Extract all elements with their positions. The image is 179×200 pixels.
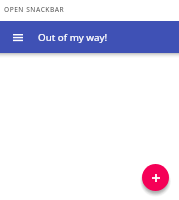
staticText: OPEN SNACKBAR [4, 5, 65, 14]
button[interactable]: Open navigation menu [2, 21, 34, 53]
button[interactable]: OPEN SNACKBAR [0, 0, 65, 21]
staticText: Out of my way! [38, 31, 108, 44]
button[interactable]: Add [142, 164, 169, 191]
